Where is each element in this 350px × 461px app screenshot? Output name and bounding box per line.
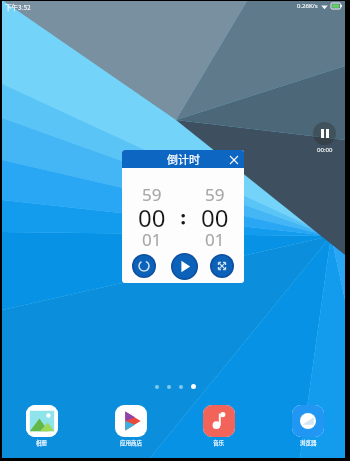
button[interactable]: Start [171,253,198,280]
staticText: 音乐 [213,439,225,447]
staticText: 倒计时 [167,151,200,167]
staticText: 相册 [36,439,48,447]
button[interactable]: Reset [132,254,156,278]
staticText: 01 [142,228,162,251]
button[interactable]: 浏览器 [292,405,324,447]
button[interactable]: Pause [313,122,336,145]
staticText: 0.26K/s [297,2,318,10]
staticText: 00:00 [317,146,333,154]
staticText: 00 [201,201,229,234]
staticText: 59 [205,183,225,206]
staticText: 59 [142,183,162,206]
staticText: 01 [205,228,225,251]
staticText: 下午3:52 [5,2,31,11]
staticText: 应用商店 [120,439,143,447]
button[interactable]: 倒计时 [122,150,244,168]
button[interactable]: 应用商店 [115,405,147,447]
button[interactable]: 音乐 [203,405,235,447]
button[interactable]: 相册 [26,405,58,447]
staticText: 00 [138,201,166,234]
button[interactable]: Fullscreen [210,254,234,278]
staticText: 浏览器 [300,439,317,447]
button[interactable]: Close [227,153,240,166]
